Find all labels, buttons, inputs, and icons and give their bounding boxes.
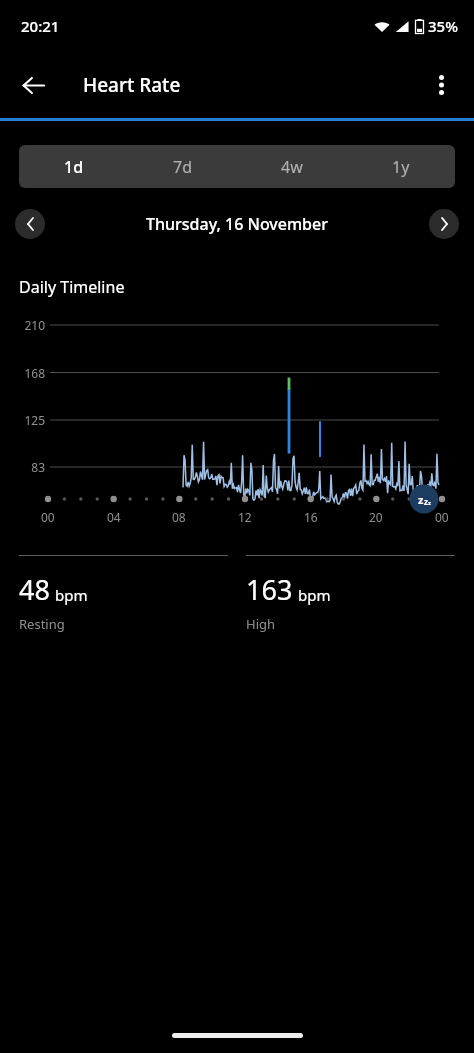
staticText: 12	[238, 509, 252, 525]
button[interactable]: 1d	[19, 145, 128, 188]
staticText: bpm	[298, 585, 331, 605]
staticText: 168	[24, 365, 45, 381]
staticText: 48	[19, 571, 50, 608]
button[interactable]: Next day	[429, 209, 459, 239]
staticText: Daily Timeline	[19, 276, 125, 298]
button[interactable]: More options	[419, 63, 463, 107]
staticText: 08	[172, 509, 186, 525]
button[interactable]: Sleep period	[411, 486, 438, 513]
staticText: 163	[246, 571, 293, 608]
button[interactable]: 7d	[128, 145, 237, 188]
staticText: 16	[304, 509, 318, 525]
staticText: 1y	[392, 156, 410, 178]
button[interactable]: 163	[246, 555, 455, 633]
staticText: Resting	[19, 615, 65, 633]
staticText: 35%	[428, 16, 458, 36]
staticText: 83	[31, 459, 45, 475]
staticText: 00	[435, 509, 449, 525]
staticText: Heart Rate	[83, 72, 181, 98]
button[interactable]: 48	[19, 555, 228, 633]
staticText: 00	[41, 509, 55, 525]
staticText: 210	[24, 317, 45, 333]
staticText: High	[246, 615, 276, 633]
staticText: 7d	[173, 156, 192, 178]
staticText: z	[428, 499, 431, 507]
staticText: 20	[369, 509, 383, 525]
staticText: 125	[24, 412, 45, 428]
button[interactable]: 1y	[346, 145, 455, 188]
button[interactable]: Previous day	[15, 209, 45, 239]
button[interactable]: 4w	[237, 145, 346, 188]
staticText: 4w	[281, 156, 303, 178]
button[interactable]: Back	[11, 63, 55, 107]
staticText: 20:21	[21, 16, 60, 36]
staticText: 1d	[64, 156, 84, 178]
staticText: z	[418, 492, 424, 507]
staticText: z	[424, 496, 428, 507]
staticText: bpm	[55, 585, 88, 605]
staticText: 04	[107, 509, 121, 525]
staticText: Thursday, 16 November	[146, 213, 328, 235]
